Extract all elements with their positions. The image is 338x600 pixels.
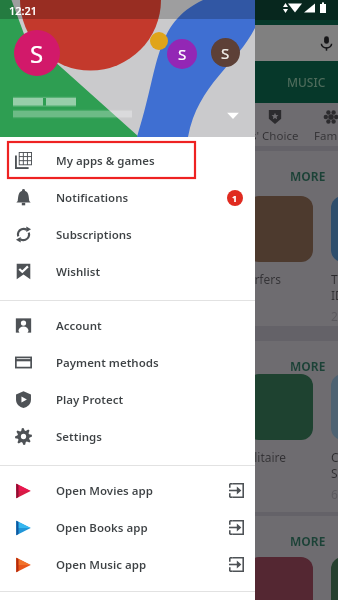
staticText: Account <box>56 318 102 334</box>
staticText: s' Choice <box>251 128 299 144</box>
staticText: Open Music app <box>56 557 147 573</box>
staticText: Family <box>314 128 338 144</box>
staticText: Open Books app <box>56 520 148 536</box>
other: Open app <box>229 483 244 498</box>
staticText: Truec <box>331 271 338 287</box>
staticText: Play Protect <box>56 392 124 408</box>
button[interactable]: My apps & games <box>0 142 255 179</box>
button[interactable]: Settings <box>0 418 255 455</box>
staticText: Candy <box>331 449 338 465</box>
button[interactable]: s' Choice <box>233 110 317 144</box>
button[interactable]: Payment methods <box>0 344 255 381</box>
button[interactable]: Play Protect <box>0 381 255 418</box>
staticText: MORE <box>290 358 326 374</box>
staticText: 61 MI <box>331 486 338 502</box>
staticText: Saga <box>331 465 338 481</box>
staticText: 12:21 <box>9 3 38 18</box>
staticText: MORE <box>290 168 326 184</box>
staticText: urfers <box>247 271 281 287</box>
staticText: S <box>221 43 230 63</box>
staticText: ID, SM <box>331 287 338 303</box>
staticText: S <box>178 44 187 64</box>
staticText: 26 MI <box>331 308 338 324</box>
other: Voice search <box>319 36 334 51</box>
other: Open app <box>229 520 244 535</box>
button[interactable]: Expand account list <box>226 108 240 122</box>
staticText: Settings <box>56 429 102 445</box>
staticText: My apps & games <box>56 153 155 169</box>
button[interactable]: Open Movies app <box>0 472 255 509</box>
staticText: Notifications <box>56 190 129 206</box>
button[interactable]: S <box>14 30 60 76</box>
staticText: S <box>30 37 44 70</box>
other: Open app <box>229 557 244 572</box>
staticText: Wishlist <box>56 264 101 280</box>
staticText: Open Movies app <box>56 483 153 499</box>
staticText: olitaire <box>247 449 287 465</box>
button[interactable]: Family <box>302 110 338 144</box>
button[interactable]: Wishlist <box>0 253 255 290</box>
staticText: 1 <box>232 192 238 204</box>
button[interactable]: S <box>167 39 197 69</box>
button[interactable]: S <box>211 38 240 67</box>
staticText: Subscriptions <box>56 227 132 243</box>
button[interactable]: Open Music app <box>0 546 255 583</box>
button[interactable]: Subscriptions <box>0 216 255 253</box>
button[interactable]: Open Books app <box>0 509 255 546</box>
button[interactable]: Account <box>0 307 255 344</box>
staticText: Payment methods <box>56 355 159 371</box>
staticText: MUSIC <box>287 74 326 90</box>
button[interactable]: Notifications <box>0 179 255 216</box>
staticText: MORE <box>290 533 326 549</box>
